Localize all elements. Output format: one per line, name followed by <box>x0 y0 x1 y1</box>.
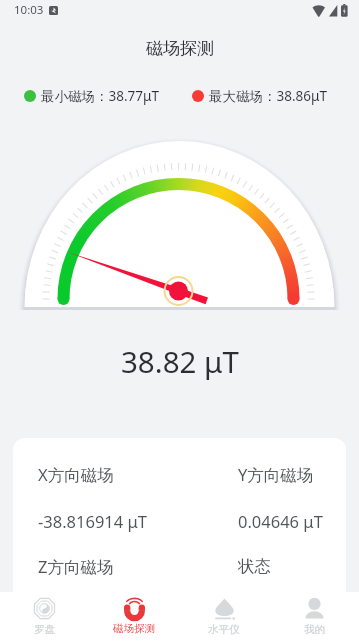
button[interactable]: Level <box>179 592 269 643</box>
staticText: 0.04646 μT <box>238 510 323 532</box>
staticText: X方向磁场 <box>38 463 114 486</box>
staticText: 我的 <box>304 623 325 636</box>
staticText: -38.816914 μT <box>38 510 148 532</box>
button[interactable]: Profile <box>269 592 359 643</box>
staticText: 水平仪 <box>208 623 240 636</box>
button[interactable]: Magnetic field detection <box>89 592 179 643</box>
staticText: 10:03 <box>14 2 44 18</box>
staticText: Y方向磁场 <box>238 463 314 486</box>
button[interactable]: Compass <box>0 592 89 643</box>
staticText: 38.82 μT <box>121 341 239 381</box>
staticText: 最大磁场：38.86μT <box>209 87 327 105</box>
staticText: 罗盘 <box>34 623 55 636</box>
staticText: 磁场探测 <box>113 622 155 635</box>
staticText: 最小磁场：38.77μT <box>41 87 159 105</box>
staticText: 状态 <box>238 556 271 577</box>
staticText: 磁场探测 <box>146 38 214 59</box>
staticText: Z方向磁场 <box>38 555 114 578</box>
